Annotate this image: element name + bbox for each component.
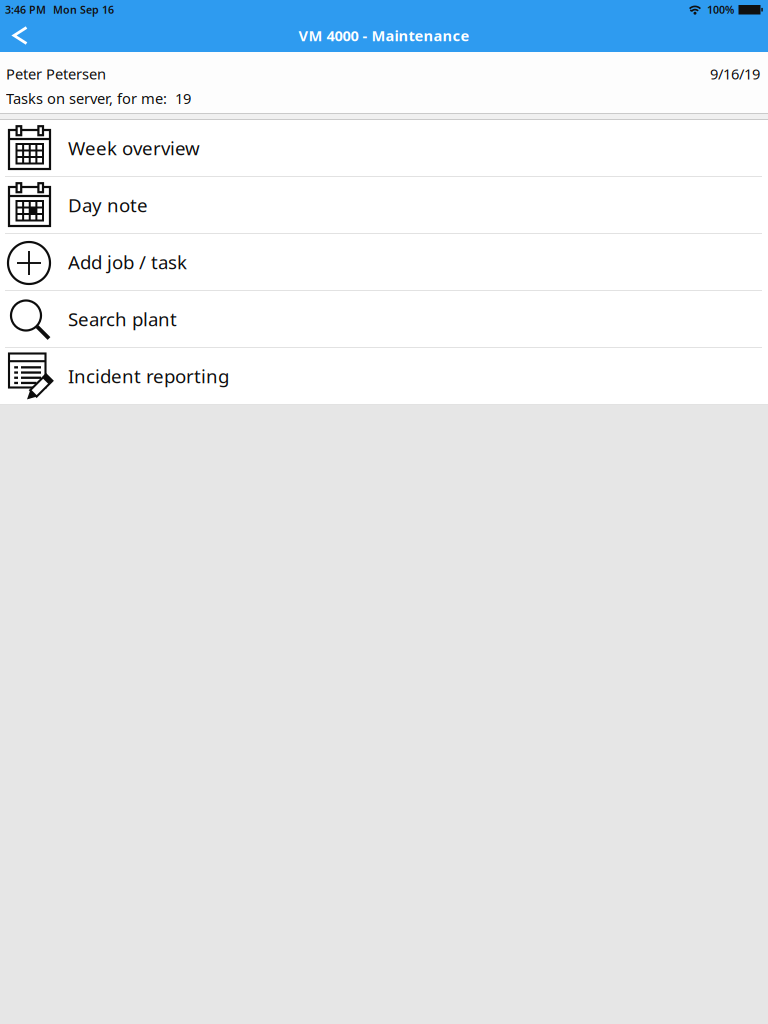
staticText: Add job / task [68,250,187,274]
staticText: Incident reporting [68,364,229,388]
button[interactable]: Add job / task [0,234,768,291]
staticText: VM 4000 - Maintenance [298,26,469,45]
staticText: 9/16/19 [710,64,760,83]
button[interactable]: Week overview [0,120,768,177]
staticText: Day note [68,193,148,217]
staticText: 3:46 PM [5,2,46,17]
button[interactable]: Back [0,19,40,52]
button[interactable]: Day note [0,177,768,234]
staticText: Tasks on server, for me: 19 [6,88,191,108]
staticText: 100% [707,2,734,17]
staticText: Peter Petersen [6,64,106,83]
staticText: Search plant [68,307,177,331]
staticText: Mon Sep 16 [53,2,114,17]
staticText: Week overview [68,136,200,160]
button[interactable]: Search plant [0,291,768,348]
button[interactable]: Incident reporting [0,348,768,405]
